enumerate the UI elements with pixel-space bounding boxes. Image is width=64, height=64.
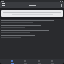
button[interactable]: Library bbox=[37, 59, 41, 64]
button[interactable] bbox=[1, 20, 63, 24]
button[interactable]: More options bbox=[59, 3, 63, 7]
button[interactable]: Profile bbox=[50, 59, 54, 64]
button[interactable] bbox=[1, 30, 63, 34]
button[interactable]: Open navigation menu bbox=[1, 3, 5, 7]
button[interactable] bbox=[1, 25, 63, 29]
button[interactable]: Home bbox=[10, 59, 14, 64]
button[interactable]: Search bbox=[23, 59, 27, 64]
button[interactable] bbox=[1, 10, 63, 17]
button[interactable] bbox=[1, 35, 63, 38]
